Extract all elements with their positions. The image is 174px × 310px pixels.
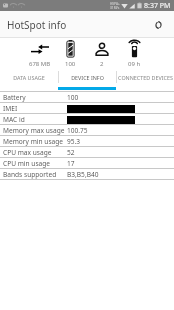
staticText: B3,B5,B40 — [67, 170, 99, 179]
staticText: DEVICE INFO — [71, 74, 104, 81]
staticText: CONNECTED DEVICES — [118, 74, 173, 81]
staticText: 8:37 PM — [144, 1, 171, 11]
button[interactable]: DEVICE INFO — [58, 67, 116, 87]
staticText: HotSpot info — [7, 18, 67, 32]
staticText: Memory min usage — [3, 137, 64, 146]
button[interactable]: CPU max usage — [0, 147, 174, 158]
button[interactable]: Memory max usage — [0, 125, 174, 136]
staticText: Battery — [3, 93, 26, 102]
staticText: 09 h — [128, 60, 141, 67]
button[interactable]: 100 — [55, 38, 86, 67]
button[interactable]: 09 h — [118, 38, 150, 67]
button[interactable]: DATA USAGE — [0, 67, 58, 87]
button[interactable]: CONNECTED DEVICES — [116, 67, 174, 87]
button[interactable]: 2 — [86, 38, 118, 67]
staticText: 100.75 — [67, 126, 88, 135]
button[interactable]: Battery — [0, 92, 174, 103]
staticText: MAC id — [3, 115, 25, 124]
staticText: 100 — [65, 60, 76, 67]
button[interactable]: Memory min usage — [0, 136, 174, 147]
button[interactable]: MAC id — [0, 114, 174, 125]
button[interactable]: Bands supported — [0, 169, 174, 180]
staticText: 2 — [100, 60, 104, 67]
button[interactable]: Refresh — [148, 15, 168, 35]
staticText: 678 MB — [29, 60, 51, 67]
staticText: Bands supported — [3, 170, 57, 179]
staticText: 52 — [67, 148, 75, 157]
staticText: DATA USAGE — [13, 74, 45, 81]
button[interactable]: CPU min usage — [0, 158, 174, 169]
staticText: 31M/s — [110, 6, 120, 10]
staticText: 100 — [67, 93, 79, 102]
staticText: 17 — [67, 159, 75, 168]
button[interactable]: 678 MB — [24, 38, 55, 67]
staticText: CPU max usage — [3, 148, 52, 157]
button[interactable]: IMEI — [0, 103, 174, 114]
staticText: HSPA+ — [110, 2, 120, 6]
staticText: 95.3 — [67, 137, 81, 146]
staticText: Memory max usage — [3, 126, 65, 135]
staticText: IMEI — [3, 104, 18, 113]
staticText: CPU min usage — [3, 159, 51, 168]
